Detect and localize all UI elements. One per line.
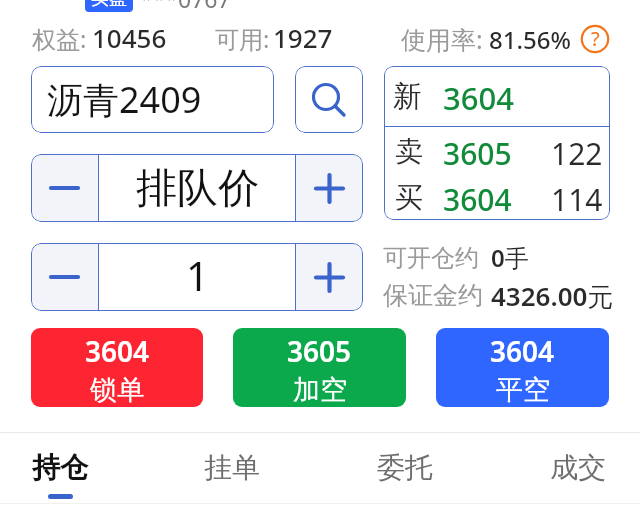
button[interactable]: Decrease — [31, 243, 98, 311]
button[interactable]: 3604 — [31, 328, 203, 407]
staticText: 保证金约 — [383, 280, 483, 311]
staticText: 成交 — [550, 450, 606, 485]
staticText: 3605 — [443, 133, 512, 174]
staticText: 可用: — [215, 22, 270, 55]
button[interactable]: Increase — [296, 154, 363, 222]
staticText: 122 — [551, 133, 603, 174]
staticText: 10456 — [92, 20, 167, 55]
staticText: 3605 — [287, 332, 352, 370]
staticText: 114 — [551, 179, 603, 220]
button[interactable]: Increase — [296, 243, 363, 311]
button[interactable]: 委托 — [335, 433, 475, 503]
button[interactable]: 挂单 — [162, 433, 302, 503]
staticText: 排队价 — [136, 163, 259, 215]
staticText: 3604 — [443, 77, 514, 119]
staticText: 平空 — [496, 373, 550, 407]
staticText: 使用率: — [401, 22, 483, 56]
button[interactable]: Help — [580, 24, 610, 54]
staticText: 0手 — [491, 241, 529, 274]
button[interactable]: 新 — [384, 66, 610, 126]
button[interactable]: 成交 — [508, 433, 640, 503]
button[interactable]: 实盘 — [91, 0, 127, 10]
button[interactable]: Search — [295, 66, 363, 133]
staticText: 锁单 — [90, 373, 144, 407]
staticText: ***0767 — [140, 0, 231, 14]
staticText: 新 — [393, 78, 422, 115]
staticText: 权益: — [32, 22, 87, 55]
button[interactable]: 排队价 — [99, 154, 295, 222]
staticText: 持仓 — [32, 450, 88, 485]
staticText: ? — [591, 25, 600, 52]
staticText: 可开仓约 — [383, 243, 479, 273]
button[interactable]: 沥青2409 — [31, 66, 274, 133]
staticText: 81.56% — [489, 23, 571, 56]
staticText: 4326.00元 — [491, 278, 614, 314]
staticText: 挂单 — [204, 450, 260, 485]
staticText: 1927 — [273, 20, 333, 55]
staticText: 沥青2409 — [47, 75, 202, 124]
staticText: 实盘 — [91, 0, 127, 10]
staticText: 卖 — [395, 134, 423, 169]
button[interactable]: 3604 — [436, 328, 609, 407]
staticText: 3604 — [490, 332, 555, 370]
button[interactable]: 买 — [384, 173, 610, 219]
button[interactable]: 3605 — [233, 328, 406, 407]
staticText: 委托 — [377, 450, 433, 485]
button[interactable]: 持仓 — [0, 433, 130, 503]
staticText: 买 — [395, 180, 423, 215]
button[interactable]: 1 — [99, 243, 295, 311]
staticText: 3604 — [85, 332, 150, 370]
staticText: 加空 — [293, 373, 347, 407]
staticText: 3604 — [443, 179, 512, 220]
button[interactable]: Decrease — [31, 154, 98, 222]
button[interactable]: 卖 — [384, 127, 610, 173]
staticText: 1 — [186, 248, 209, 302]
